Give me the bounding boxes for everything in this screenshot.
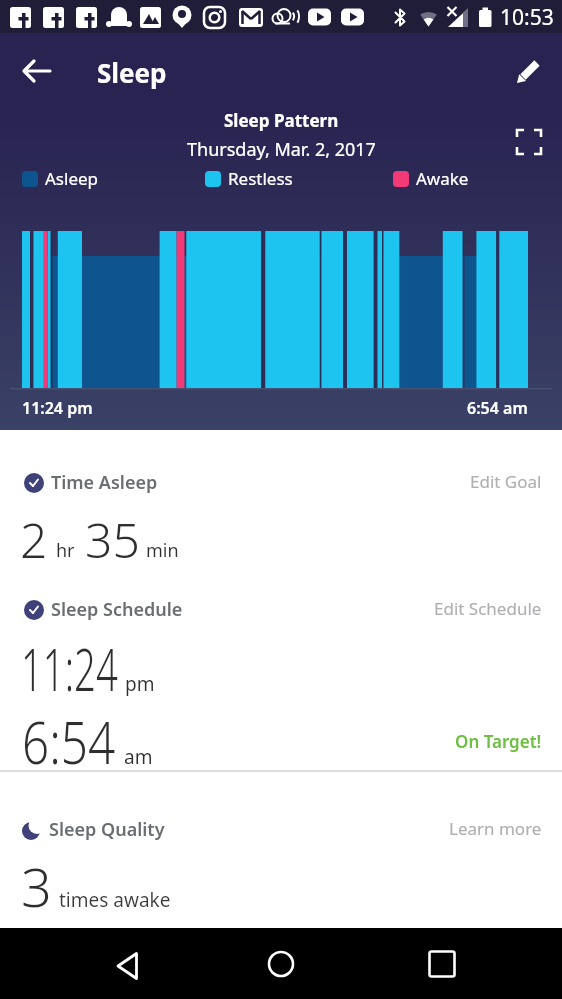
- button[interactable]: Sleep Quality: [22, 817, 165, 842]
- button[interactable]: Restless: [205, 167, 293, 190]
- staticText: Sleep Quality: [49, 817, 165, 842]
- staticText: 10:53: [500, 3, 554, 32]
- staticText: 2: [20, 507, 48, 572]
- staticText: Time Asleep: [51, 470, 158, 495]
- staticText: 11:24: [21, 629, 118, 708]
- staticText: Asleep: [45, 167, 99, 190]
- staticText: 35: [85, 507, 140, 572]
- staticText: min: [146, 538, 179, 563]
- button[interactable]: Awake: [393, 167, 469, 190]
- staticText: Sleep Schedule: [51, 597, 183, 622]
- staticText: Awake: [416, 167, 469, 190]
- staticText: times awake: [59, 887, 171, 913]
- button[interactable]: Time Asleep: [24, 470, 158, 495]
- button[interactable]: On Target!: [455, 730, 542, 753]
- staticText: pm: [125, 671, 155, 697]
- button[interactable]: [513, 53, 547, 87]
- button[interactable]: Edit Schedule: [434, 597, 542, 620]
- button[interactable]: Sleep Schedule: [24, 597, 183, 622]
- button[interactable]: [116, 952, 144, 980]
- staticText: hr: [56, 538, 75, 563]
- staticText: Thursday, Mar. 2, 2017: [187, 137, 376, 162]
- button[interactable]: [22, 57, 52, 85]
- staticText: 6:54: [22, 702, 115, 781]
- staticText: Restless: [228, 167, 293, 190]
- button[interactable]: Asleep: [22, 167, 99, 190]
- button[interactable]: Edit Goal: [470, 470, 542, 493]
- button[interactable]: [267, 950, 295, 978]
- button[interactable]: [428, 950, 456, 978]
- staticText: Sleep Pattern: [224, 109, 339, 132]
- staticText: 11:24 pm: [22, 397, 93, 419]
- staticText: 6:54 am: [467, 397, 528, 419]
- button[interactable]: Learn more: [449, 817, 542, 840]
- staticText: am: [124, 744, 153, 770]
- button[interactable]: [517, 130, 541, 154]
- staticText: 3: [21, 849, 52, 923]
- staticText: Sleep: [97, 55, 167, 90]
